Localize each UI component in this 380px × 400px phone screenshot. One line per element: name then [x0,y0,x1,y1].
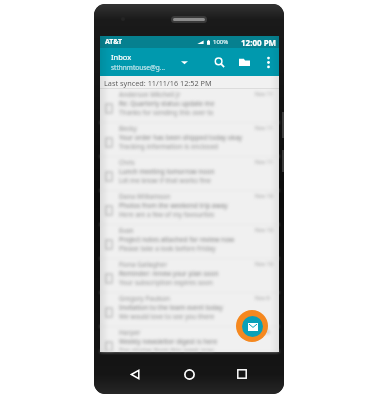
staticText: Project notes attached for review now [119,235,235,244]
staticText: Nov 11 [255,90,273,97]
button[interactable]: More options [259,53,277,71]
staticText: Nov 11 [255,158,273,165]
staticText: stthnmtouse@g... [111,63,166,72]
staticText: Nov 10 [255,226,273,233]
staticText: Nov 10 [255,260,273,267]
staticText: Let me know if that works fine [119,176,211,185]
staticText: Evan [119,226,134,235]
button[interactable]: Home [177,362,201,386]
button[interactable]: Back [123,362,147,386]
staticText: 12:00 PM [241,37,277,48]
button[interactable]: Search [209,52,229,72]
staticText: Invitation to the team event today [119,303,223,312]
staticText: Fiona Gallagher [119,260,168,269]
staticText: Here are a few of my favourites [119,210,215,219]
staticText: Harper [119,328,141,337]
staticText: Top stories from this week now [119,346,214,353]
button[interactable]: Recents [230,362,254,386]
staticText: Chris [119,158,135,167]
button[interactable]: Evan [100,225,279,259]
button[interactable]: Gregory Paulson [100,293,279,327]
staticText: AT&T [105,37,123,47]
staticText: Lunch meeting tomorrow noon [119,167,215,176]
staticText: Nov 10 [255,192,273,199]
button[interactable]: Compose [236,310,268,342]
staticText: Nov 11 [255,124,273,131]
button[interactable]: Dana Williamson [100,191,279,225]
staticText: Reminder: renew your plan soon [119,269,219,278]
staticText: Nov 9 [255,294,270,301]
staticText: Nov 8 [255,328,270,335]
staticText: Dana Williamson [119,192,171,201]
button[interactable]: Fiona Gallagher [100,259,279,293]
staticText: Thanks for sending this over to [119,108,214,117]
button[interactable]: Inbox [111,52,166,72]
staticText: Please take a look before Friday [119,244,216,253]
staticText: Inbox [111,52,132,62]
staticText: Anderson Mitchell Jr [119,90,181,99]
staticText: Photos from the weekend trip away [119,201,228,210]
staticText: Your subscription expires soon [119,278,213,287]
staticText: We would love to see you there [119,312,215,321]
staticText: Re: Quarterly status update me [119,99,215,108]
staticText: 100% [213,38,229,46]
staticText: Your order has been shipped today okay [119,133,243,142]
staticText: Becky [119,124,137,133]
staticText: Gregory Paulson [119,294,170,303]
button[interactable]: Chris [100,157,279,191]
button[interactable]: Expand [177,55,191,69]
button[interactable]: Becky [100,123,279,157]
button[interactable]: Anderson Mitchell Jr [100,89,279,123]
button[interactable]: Folders [234,52,254,72]
button[interactable]: Harper [100,327,279,352]
staticText: Tracking information is enclosed [119,142,219,151]
staticText: Last synced: 11/11/16 12:52 PM [104,78,212,88]
staticText: Weekly newsletter digest is here [119,337,218,346]
